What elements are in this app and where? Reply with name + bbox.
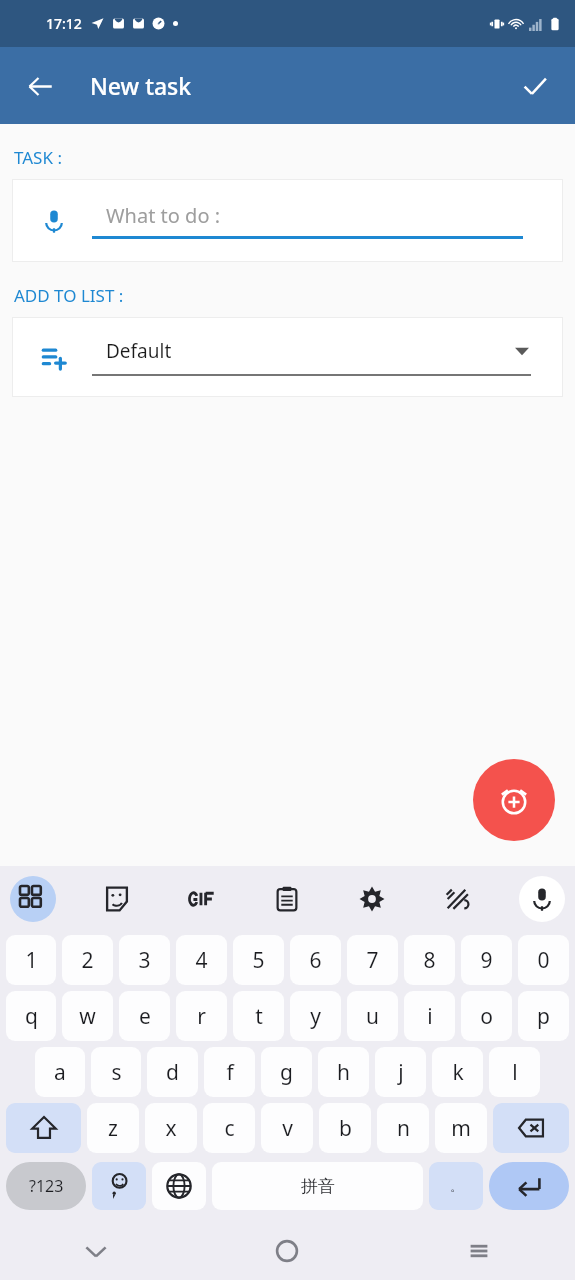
button[interactable]: j [375,1047,426,1097]
button[interactable]: v [261,1103,313,1153]
button[interactable]: o [461,991,512,1041]
button[interactable]: Stickers [94,876,140,922]
button[interactable]: 。 [429,1162,483,1210]
staticText: e [139,1002,151,1031]
button[interactable]: Back [12,58,68,114]
staticText: y [310,1002,321,1031]
button[interactable]: h [318,1047,369,1097]
staticText: w [79,1002,96,1031]
button[interactable]: b [319,1103,371,1153]
button[interactable]: 6 [290,935,341,985]
button[interactable]: Recents [383,1222,575,1280]
button[interactable]: i [404,991,455,1041]
button[interactable]: m [435,1103,487,1153]
staticText: 3 [138,946,151,975]
button[interactable]: 5 [233,935,284,985]
staticText: 8 [423,946,436,975]
staticText: 4 [195,946,208,975]
button[interactable]: Symbols [10,876,56,922]
staticText: c [224,1114,235,1143]
staticText: 拼音 [301,1176,335,1197]
button[interactable]: Backspace [493,1103,569,1153]
button[interactable]: g [261,1047,312,1097]
staticText: t [255,1002,263,1031]
button[interactable]: e [119,991,170,1041]
staticText: d [166,1058,179,1087]
button[interactable]: GIF [179,876,225,922]
staticText: o [480,1002,493,1031]
staticText: 2 [81,946,94,975]
button[interactable]: Home [191,1222,383,1280]
button[interactable]: Change language [152,1162,206,1210]
staticText: Default [106,338,172,364]
staticText: r [197,1002,206,1031]
staticText: k [452,1058,464,1087]
button[interactable]: 2 [62,935,113,985]
staticText: s [111,1058,122,1087]
staticText: 6 [309,946,322,975]
staticText: j [398,1058,404,1087]
button[interactable]: Voice input [12,179,563,262]
button[interactable]: r [176,991,227,1041]
button[interactable]: 3 [119,935,170,985]
button[interactable]: Back [0,1222,191,1280]
staticText: i [427,1002,433,1031]
button[interactable]: Save task [507,58,563,114]
button[interactable]: l [489,1047,540,1097]
button[interactable]: c [203,1103,255,1153]
button[interactable]: 拼音 [212,1162,423,1210]
staticText: h [337,1058,350,1087]
button[interactable]: n [377,1103,429,1153]
button[interactable]: d [147,1047,198,1097]
staticText: ADD TO LIST : [14,284,124,307]
button[interactable]: x [145,1103,197,1153]
button[interactable]: 9 [461,935,512,985]
button[interactable]: a [35,1047,85,1097]
button[interactable]: k [432,1047,483,1097]
button[interactable]: Shift [6,1103,81,1153]
button[interactable]: q [6,991,56,1041]
staticText: x [165,1114,177,1143]
button[interactable]: u [347,991,398,1041]
staticText: v [282,1114,293,1143]
staticText: 7 [366,946,379,975]
staticText: u [366,1002,379,1031]
button[interactable]: Default [12,317,563,397]
button[interactable]: Handwriting [434,876,480,922]
staticText: b [339,1114,352,1143]
button[interactable]: s [91,1047,141,1097]
button[interactable]: t [233,991,284,1041]
button[interactable]: y [290,991,341,1041]
staticText: 9 [480,946,493,975]
button[interactable]: Add reminder [473,759,555,841]
button[interactable]: w [62,991,113,1041]
button[interactable]: Voice typing [519,876,565,922]
button[interactable]: 4 [176,935,227,985]
staticText: n [397,1114,410,1143]
staticText: ?123 [29,1175,64,1197]
staticText: 0 [537,946,550,975]
staticText: p [537,1002,550,1031]
staticText: m [451,1114,471,1143]
button[interactable]: z [87,1103,139,1153]
button[interactable]: 1 [6,935,56,985]
button[interactable]: Enter [489,1162,569,1210]
staticText: z [108,1114,118,1143]
button[interactable]: f [204,1047,255,1097]
staticText: 17:12 [46,14,82,33]
button[interactable]: 7 [347,935,398,985]
button[interactable]: p [518,991,569,1041]
button[interactable]: Voice input [34,201,74,241]
button[interactable]: 8 [404,935,455,985]
button[interactable]: ?123 [6,1162,86,1210]
staticText: f [226,1058,234,1087]
staticText: 1 [25,946,38,975]
button[interactable]: Emoji and comma [92,1162,146,1210]
staticText: 。 [450,1178,463,1194]
staticText: What to do : [106,202,221,229]
button[interactable]: Clipboard [264,876,310,922]
button[interactable]: Settings [349,876,395,922]
button[interactable]: 0 [518,935,569,985]
staticText: q [25,1002,38,1031]
staticText: g [280,1058,293,1087]
